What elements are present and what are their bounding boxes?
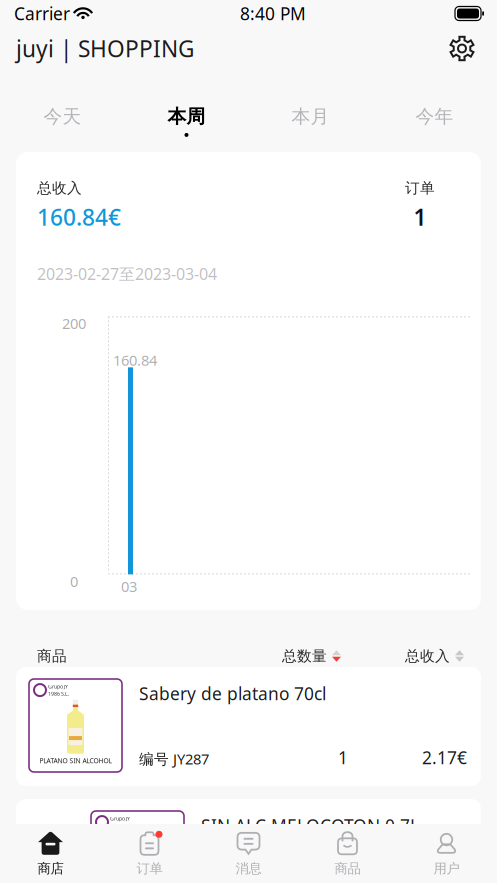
button[interactable]: Grupo JY (0, 799, 497, 883)
button[interactable]: 消息 (199, 824, 298, 883)
button[interactable]: 商品 (298, 824, 397, 883)
staticText: 2.17€ (422, 746, 467, 769)
staticText: 本周 (167, 105, 205, 128)
staticText: 编号 JY287 (139, 749, 209, 768)
staticText: PLATANO SIN ALCOHOL (39, 756, 111, 765)
staticText: 03 (121, 577, 137, 596)
button[interactable]: Grupo JY (0, 667, 497, 786)
staticText: 1 (413, 202, 426, 232)
staticText: 总数量 (282, 647, 327, 665)
staticText: 1986 S.L. (110, 822, 131, 829)
staticText: 总收入 (37, 179, 82, 197)
button[interactable]: 本周 (124, 70, 248, 140)
button[interactable]: 今年 (372, 70, 496, 140)
staticText: Sabery de platano 70cl (139, 682, 326, 705)
staticText: 消息 (235, 860, 261, 877)
button[interactable]: 今天 (0, 70, 124, 140)
staticText: 1 (338, 746, 348, 769)
staticText: 160.84 (113, 350, 157, 370)
staticText: Carrier (14, 2, 70, 25)
staticText: 1986 S.L. (48, 690, 69, 697)
staticText: 8:40 PM (240, 2, 306, 25)
staticText: 0 (70, 572, 78, 591)
button[interactable]: Settings (441, 27, 483, 69)
staticText: 商店 (37, 860, 63, 877)
staticText: Grupo JY (110, 815, 130, 822)
staticText: 2023-02-27至2023-03-04 (37, 263, 217, 284)
button[interactable]: 订单 (100, 824, 199, 883)
staticText: 商品 (334, 860, 360, 877)
staticText: 订单 (136, 860, 162, 877)
staticText: 商品 (37, 647, 67, 665)
button[interactable]: 总收入 (405, 647, 464, 665)
button[interactable]: 用户 (397, 824, 496, 883)
staticText: 今天 (43, 105, 81, 128)
button[interactable]: 总数量 (282, 647, 341, 665)
button[interactable]: 商店 (1, 824, 100, 883)
staticText: 本月 (291, 105, 329, 128)
button[interactable]: 本月 (248, 70, 372, 140)
staticText: 用户 (433, 860, 459, 877)
staticText: Grupo JY (48, 683, 68, 690)
staticText: 总收入 (405, 647, 450, 665)
staticText: 160.84€ (37, 202, 121, 232)
staticText: 200 (62, 314, 86, 333)
staticText: 今年 (415, 105, 453, 128)
staticText: juyi | SHOPPING (16, 33, 195, 63)
staticText: 订单 (405, 179, 435, 197)
staticText: SIN ALC MELOCOTON 0.7L (201, 814, 419, 837)
